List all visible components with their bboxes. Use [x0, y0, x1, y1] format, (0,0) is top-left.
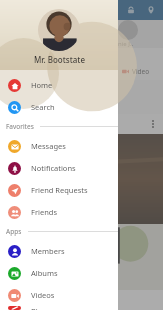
- staticText: Messages: [31, 141, 66, 151]
- button[interactable]: Videos: [0, 284, 118, 306]
- button[interactable]: Friend Requests: [0, 179, 118, 201]
- button[interactable]: Privacy: [125, 4, 137, 16]
- button[interactable]: Profile photo: [38, 9, 80, 51]
- button[interactable]: Blogs: [0, 306, 118, 310]
- staticText: Friend Requests: [31, 185, 88, 195]
- button[interactable]: Friends: [0, 201, 118, 223]
- button[interactable]: Location: [145, 4, 157, 16]
- button[interactable]: Home: [0, 74, 118, 96]
- button[interactable]: Albums: [0, 262, 118, 284]
- button[interactable]: Profile photo: [0, 0, 118, 70]
- staticText: Videos: [31, 290, 55, 300]
- staticText: Friends: [31, 207, 57, 217]
- staticText: Favorites: [6, 122, 34, 131]
- staticText: Blogs: [31, 306, 51, 310]
- staticText: Members: [31, 246, 65, 256]
- staticText: Video: [132, 67, 150, 76]
- button[interactable]: Notifications: [0, 157, 118, 179]
- button[interactable]: Members: [0, 240, 118, 262]
- staticText: Search: [31, 102, 55, 112]
- staticText: Home: [31, 80, 53, 90]
- staticText: Apps: [6, 227, 22, 236]
- staticText: nie J..: [118, 40, 134, 48]
- button[interactable]: Search: [0, 96, 118, 118]
- staticText: Albums: [31, 268, 58, 278]
- staticText: Notifications: [31, 163, 76, 173]
- button[interactable]: Messages: [0, 135, 118, 157]
- staticText: Mr. Bootstate: [34, 54, 85, 65]
